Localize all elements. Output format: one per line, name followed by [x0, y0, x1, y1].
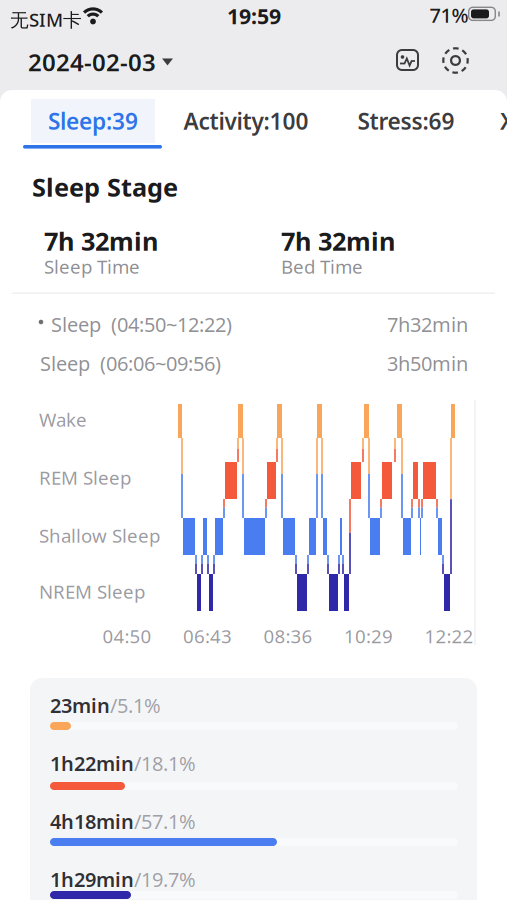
staticText: 2024-02-03 — [28, 46, 156, 78]
staticText: 7h32min — [387, 311, 468, 338]
staticText: /18.1% — [134, 750, 196, 777]
staticText: Sleep:39 — [48, 106, 138, 136]
staticText: 71% — [429, 2, 468, 28]
staticText: /57.1% — [134, 808, 196, 835]
button[interactable]: History chart — [396, 49, 419, 71]
staticText: 1h22min — [50, 750, 134, 777]
button[interactable]: Sleep:39 — [31, 99, 155, 143]
staticText: 06:43 — [183, 624, 232, 648]
staticText: 10:29 — [344, 624, 393, 648]
staticText: 3h50min — [387, 350, 468, 377]
staticText: 7h 32min — [281, 224, 395, 258]
staticText: Sleep (04:50~12:22) — [51, 311, 232, 338]
staticText: REM Sleep — [39, 465, 131, 490]
staticText: 19:59 — [227, 2, 281, 30]
button[interactable]: Stress:69 — [357, 106, 454, 136]
staticText: Stress:69 — [357, 106, 454, 136]
staticText: /5.1% — [110, 692, 161, 719]
staticText: Sleep Stage — [32, 170, 178, 204]
staticText: Sleep Time — [44, 254, 140, 279]
staticText: 4h18min — [50, 808, 134, 835]
staticText: Sleep (06:06~09:56) — [40, 350, 221, 377]
staticText: Shallow Sleep — [39, 523, 160, 548]
staticText: NREM Sleep — [39, 579, 145, 604]
staticText: /19.7% — [134, 866, 196, 893]
button[interactable]: Settings — [442, 47, 469, 74]
staticText: Wake — [39, 407, 87, 432]
button[interactable]: X — [500, 106, 507, 136]
staticText: 1h29min — [50, 866, 134, 893]
staticText: X — [500, 106, 507, 136]
staticText: 7h 32min — [44, 224, 158, 258]
staticText: Bed Time — [281, 254, 363, 279]
button[interactable]: 2024-02-03 — [28, 46, 173, 78]
staticText: 23min — [50, 692, 110, 719]
staticText: 08:36 — [263, 624, 312, 648]
staticText: 04:50 — [102, 624, 151, 648]
button[interactable]: Activity:100 — [183, 106, 308, 136]
staticText: Activity:100 — [183, 106, 308, 136]
staticText: 无SIM卡 — [10, 7, 82, 32]
staticText: 12:22 — [424, 624, 473, 648]
